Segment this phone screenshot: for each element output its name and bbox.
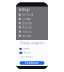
staticText: Continue: [25, 61, 39, 65]
staticText: General: [22, 13, 33, 16]
staticText: Add payment method: [19, 56, 33, 58]
button[interactable]: Battery: [16, 29, 48, 34]
button[interactable]: Privacy: [16, 17, 48, 21]
staticText: Sounds: [22, 26, 32, 29]
staticText: Choose payment: [19, 41, 44, 45]
button[interactable]: Visa 1234: [16, 52, 48, 54]
button[interactable]: Sounds: [16, 25, 48, 29]
button[interactable]: Apple Pay: [16, 48, 48, 50]
button[interactable]: Continue: [16, 61, 48, 65]
staticText: Apple Pay: [23, 48, 30, 50]
button[interactable]: Storage: [16, 34, 48, 38]
staticText: Display: [22, 21, 31, 25]
staticText: Battery: [22, 30, 31, 33]
button[interactable]: Display: [16, 21, 48, 25]
staticText: Visa 1234: [24, 52, 31, 54]
staticText: Storage: [22, 34, 32, 37]
button[interactable]: General: [16, 13, 48, 17]
staticText: Settings: [19, 8, 30, 11]
staticText: Privacy: [22, 17, 30, 21]
